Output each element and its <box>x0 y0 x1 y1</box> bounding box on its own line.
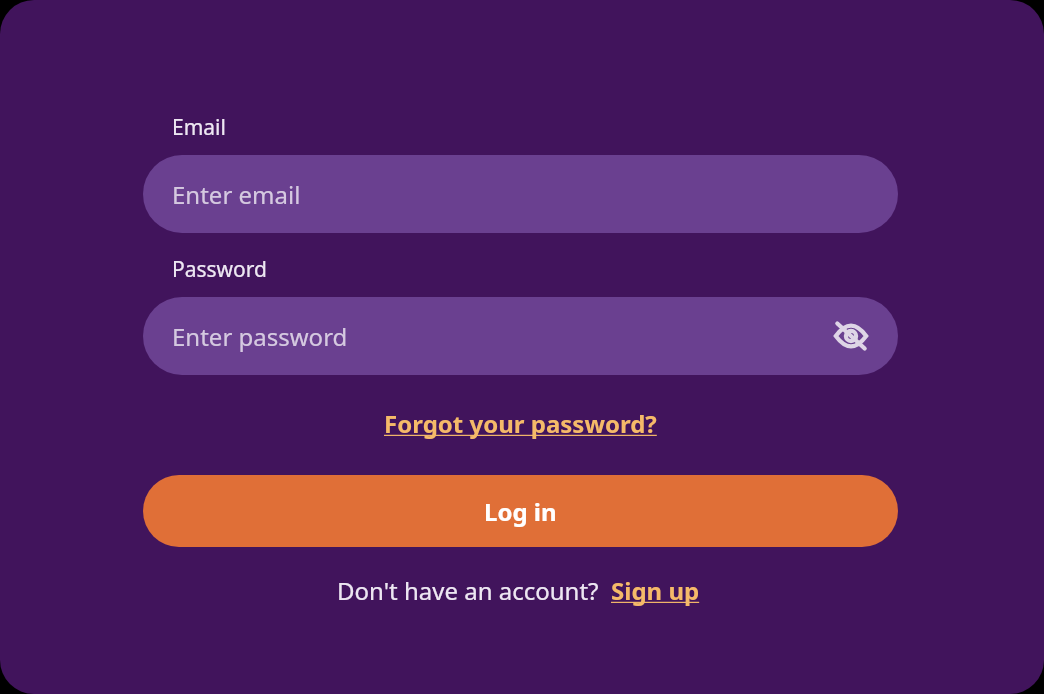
button[interactable]: Sign up <box>607 571 704 610</box>
staticText: Password <box>172 255 267 284</box>
staticText: Forgot your password? <box>384 407 657 440</box>
button[interactable]: Show password <box>828 313 874 359</box>
staticText: Sign up <box>611 574 700 607</box>
button[interactable]: Enter password <box>143 297 898 375</box>
button[interactable]: Forgot your password? <box>378 403 663 444</box>
staticText: Enter password <box>172 320 348 353</box>
staticText: Log in <box>484 495 557 528</box>
button[interactable]: Log in <box>143 475 898 547</box>
staticText: Don't have an account? <box>337 574 599 607</box>
button[interactable]: Enter email <box>143 155 898 233</box>
staticText: Email <box>172 113 226 142</box>
staticText: Enter email <box>172 178 301 211</box>
